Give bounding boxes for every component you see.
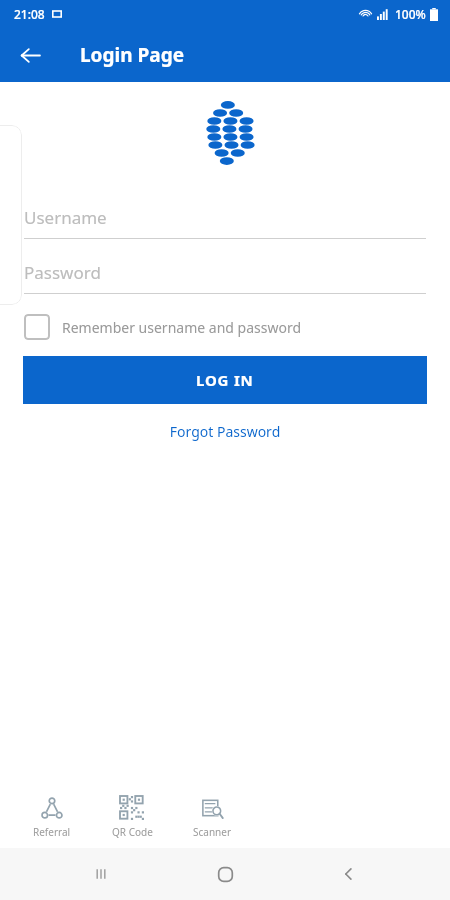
button[interactable]: Password <box>24 261 426 294</box>
staticText: Scanner <box>193 825 232 839</box>
button[interactable]: Back <box>326 851 372 897</box>
staticText: Remember username and password <box>62 318 301 337</box>
staticText: Username <box>24 206 107 229</box>
button[interactable]: Home <box>202 851 248 897</box>
button[interactable]: Forgot Password <box>0 418 450 445</box>
button[interactable]: LOG IN <box>23 356 427 404</box>
staticText: Login Page <box>80 42 185 68</box>
staticText: 100% <box>395 6 426 22</box>
button[interactable]: Scanner <box>172 792 252 843</box>
button[interactable]: QR Code <box>92 792 172 843</box>
staticText: Password <box>24 261 101 284</box>
staticText: QR Code <box>112 825 153 839</box>
staticText: LOG IN <box>196 370 254 390</box>
staticText: Referral <box>33 825 71 839</box>
button[interactable]: Back <box>8 33 52 77</box>
button[interactable]: Remember username and password <box>24 314 426 340</box>
button[interactable]: Referral <box>12 792 92 843</box>
staticText: 21:08 <box>14 6 45 22</box>
button[interactable]: Recents <box>78 851 124 897</box>
button[interactable]: Username <box>24 206 426 239</box>
